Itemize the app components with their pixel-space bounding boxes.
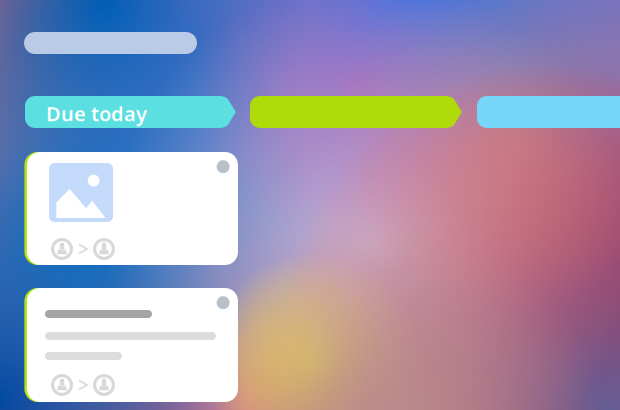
- button[interactable]: Due today: [25, 96, 236, 128]
- button[interactable]: [477, 96, 620, 128]
- staticText: Due today: [46, 100, 147, 127]
- button[interactable]: [27, 288, 238, 402]
- button[interactable]: [27, 152, 238, 265]
- button[interactable]: [250, 96, 462, 128]
